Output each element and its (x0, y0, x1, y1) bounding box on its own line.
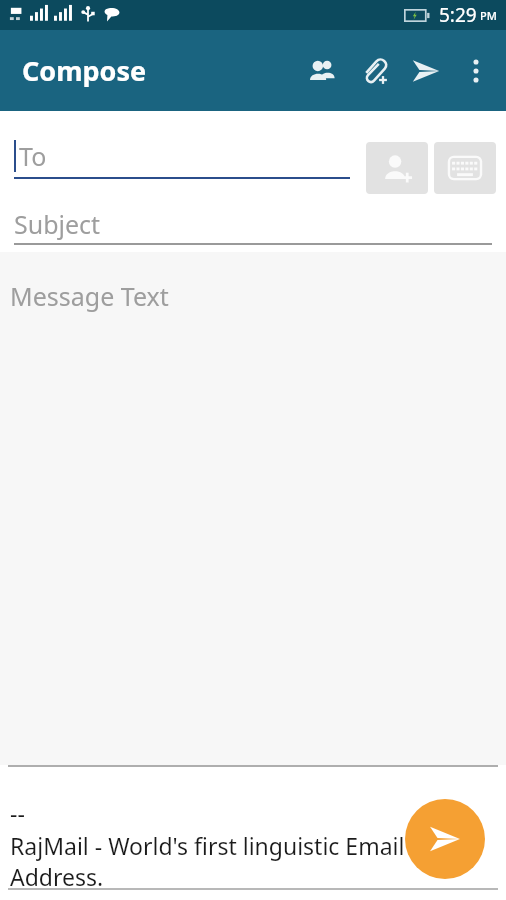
staticText: -- (10, 797, 25, 828)
staticText: 5:29 (439, 2, 477, 28)
staticText: PM (480, 8, 497, 23)
button[interactable]: Add contact (366, 142, 428, 194)
staticText: Subject (14, 207, 101, 241)
button[interactable]: More options (452, 40, 500, 102)
button[interactable]: To (14, 133, 350, 179)
staticText: Compose (22, 52, 147, 89)
button[interactable]: Send (400, 40, 452, 102)
button[interactable]: Contacts (296, 40, 348, 102)
button[interactable]: Keyboard (434, 142, 496, 194)
staticText: To (19, 139, 47, 173)
staticText: Address. (10, 861, 104, 892)
button[interactable]: Subject (14, 203, 492, 245)
staticText: RajMail - World's first linguistic Email (10, 830, 506, 861)
button[interactable]: Compose (22, 52, 147, 89)
staticText: Message Text (10, 279, 169, 313)
button[interactable]: Message Text (0, 252, 506, 765)
button[interactable]: Attach file (348, 40, 400, 102)
button[interactable]: Send (405, 799, 485, 879)
button[interactable]: -- (10, 797, 506, 892)
